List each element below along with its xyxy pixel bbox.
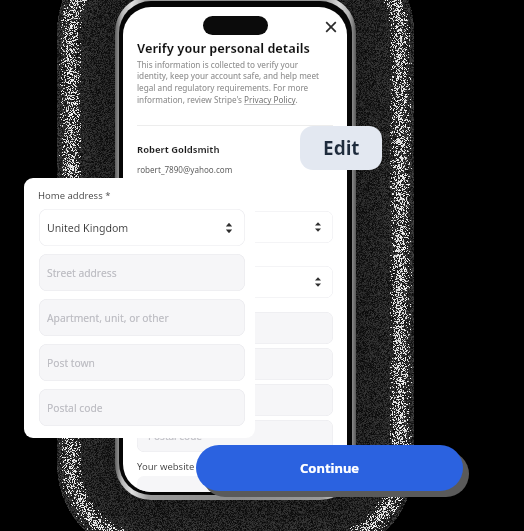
- staticText: This information is collected to verify …: [137, 59, 331, 106]
- button[interactable]: Street address: [39, 254, 245, 291]
- button[interactable]: Postal code: [137, 420, 333, 452]
- staticText: Your website *: [137, 460, 203, 473]
- button[interactable]: [137, 266, 333, 298]
- staticText: Continue: [300, 459, 360, 477]
- button[interactable]: Post town: [39, 344, 245, 381]
- button[interactable]: United Kingdom: [39, 209, 245, 246]
- button[interactable]: Apartment, unit, or other: [39, 299, 245, 336]
- button[interactable]: Edit: [300, 126, 382, 170]
- staticText: Robert Goldsmith: [137, 143, 220, 156]
- button[interactable]: [137, 211, 333, 243]
- staticText: Apartment, unit, or other: [47, 311, 169, 325]
- staticText: robert_7890@yahoo.com: [137, 164, 233, 175]
- button[interactable]: Close: [322, 18, 340, 36]
- button[interactable]: [137, 312, 333, 344]
- staticText: Postal code: [47, 401, 103, 415]
- staticText: Street address: [47, 266, 117, 280]
- button[interactable]: Continue: [196, 445, 463, 491]
- staticText: United Kingdom: [47, 221, 129, 235]
- button[interactable]: Postal code: [39, 389, 245, 426]
- staticText: Edit: [323, 135, 360, 161]
- staticText: Verify your personal details: [137, 40, 337, 57]
- button[interactable]: [137, 384, 333, 416]
- staticText: Postal code: [148, 429, 202, 443]
- staticText: Home address *: [38, 189, 111, 202]
- staticText: Post town: [47, 356, 95, 370]
